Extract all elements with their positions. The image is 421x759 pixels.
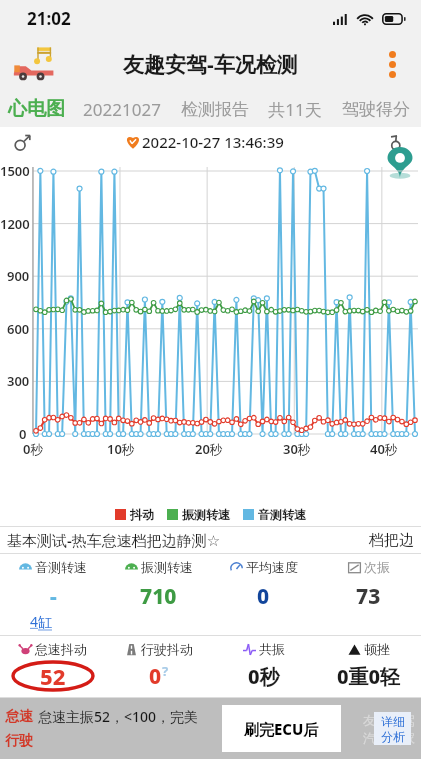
staticText: 52 (40, 661, 66, 691)
button[interactable]: 怠速抖动 (0, 641, 106, 692)
staticText: 0 (149, 662, 162, 691)
staticText: 0重0轻 (337, 663, 401, 690)
staticText: 驾驶得分 (342, 99, 410, 120)
staticText: 详细 (381, 714, 405, 729)
staticText: 次振 (364, 559, 390, 575)
staticText: 2022-10-27 13:46:39 (142, 132, 284, 152)
button[interactable]: 驾驶得分 (331, 91, 421, 127)
button[interactable]: 共11天 (259, 91, 331, 127)
button[interactable]: App logo (12, 41, 58, 87)
staticText: 710 (140, 582, 177, 611)
staticText: 20秒 (195, 440, 223, 458)
staticText: 音测转速 (258, 507, 306, 522)
staticText: 振测转速 (141, 559, 193, 575)
staticText: 共11天 (268, 98, 322, 121)
staticText: 10秒 (107, 440, 135, 458)
staticText: 600 (7, 320, 30, 338)
staticText: 73 (356, 582, 381, 611)
button[interactable]: 基本测试-热车怠速档把边静测☆ (0, 527, 421, 553)
button[interactable]: 心电图 (0, 91, 73, 127)
staticText: 基本测试-热车怠速档把边静测☆ (7, 530, 221, 550)
button[interactable]: 平均速度 (211, 559, 316, 611)
button[interactable]: Location (387, 147, 413, 180)
staticText: 音测转速 (35, 559, 87, 575)
staticText: 平均速度 (246, 559, 298, 575)
button[interactable]: 振测转速 (106, 559, 211, 611)
staticText: 1200 (0, 215, 30, 233)
staticText: 行驶抖动 (141, 641, 193, 657)
button[interactable]: 20221027 (73, 91, 171, 127)
staticText: 40秒 (370, 440, 398, 458)
button[interactable]: 共振 (211, 641, 316, 692)
button[interactable]: 音测转速 (0, 559, 106, 611)
staticText: 抖动 (130, 507, 154, 522)
staticText: 900 (7, 267, 30, 285)
button[interactable]: 次振 (316, 559, 421, 611)
staticText: 行驶 (5, 732, 33, 750)
staticText: 21:02 (27, 7, 71, 30)
staticText: 刷完ECU后 (244, 719, 319, 739)
staticText: 友趣安驾-车况检测 (123, 50, 298, 79)
staticText: 30秒 (283, 440, 311, 458)
staticText: 汽车之家 (363, 730, 415, 746)
staticText: - (50, 582, 57, 611)
staticText: 0秒 (248, 663, 280, 690)
staticText: 300 (7, 372, 30, 390)
staticText: 怠速抖动 (35, 641, 87, 657)
staticText: 检测报告 (181, 99, 249, 120)
staticText: 分析 (381, 729, 405, 744)
button[interactable]: More options (374, 46, 410, 82)
staticText: 友趣安驾 (363, 712, 415, 728)
other: Male (14, 134, 31, 151)
staticText: 怠速 (5, 708, 33, 726)
staticText: ? (162, 662, 169, 680)
staticText: 20221027 (83, 98, 161, 121)
staticText: 0秒 (23, 440, 44, 458)
staticText: 顿挫 (364, 641, 390, 657)
staticText: 怠速主振52，<100，完美 (38, 707, 199, 726)
staticText: 0 (257, 582, 270, 611)
other: Female (388, 135, 403, 150)
button[interactable]: 4缸 (30, 612, 53, 631)
staticText: 4缸 (30, 612, 53, 631)
staticText: 0 (19, 425, 27, 443)
staticText: 共振 (259, 641, 285, 657)
staticText: 档把边 (369, 531, 414, 550)
button[interactable]: 顿挫 (316, 641, 421, 692)
staticText: 1500 (0, 162, 30, 180)
button[interactable]: 检测报告 (171, 91, 259, 127)
staticText: 心电图 (8, 97, 65, 121)
staticText: 振测转速 (182, 507, 230, 522)
button[interactable]: 行驶抖动 (106, 641, 211, 692)
button[interactable]: 详细 (374, 712, 411, 745)
